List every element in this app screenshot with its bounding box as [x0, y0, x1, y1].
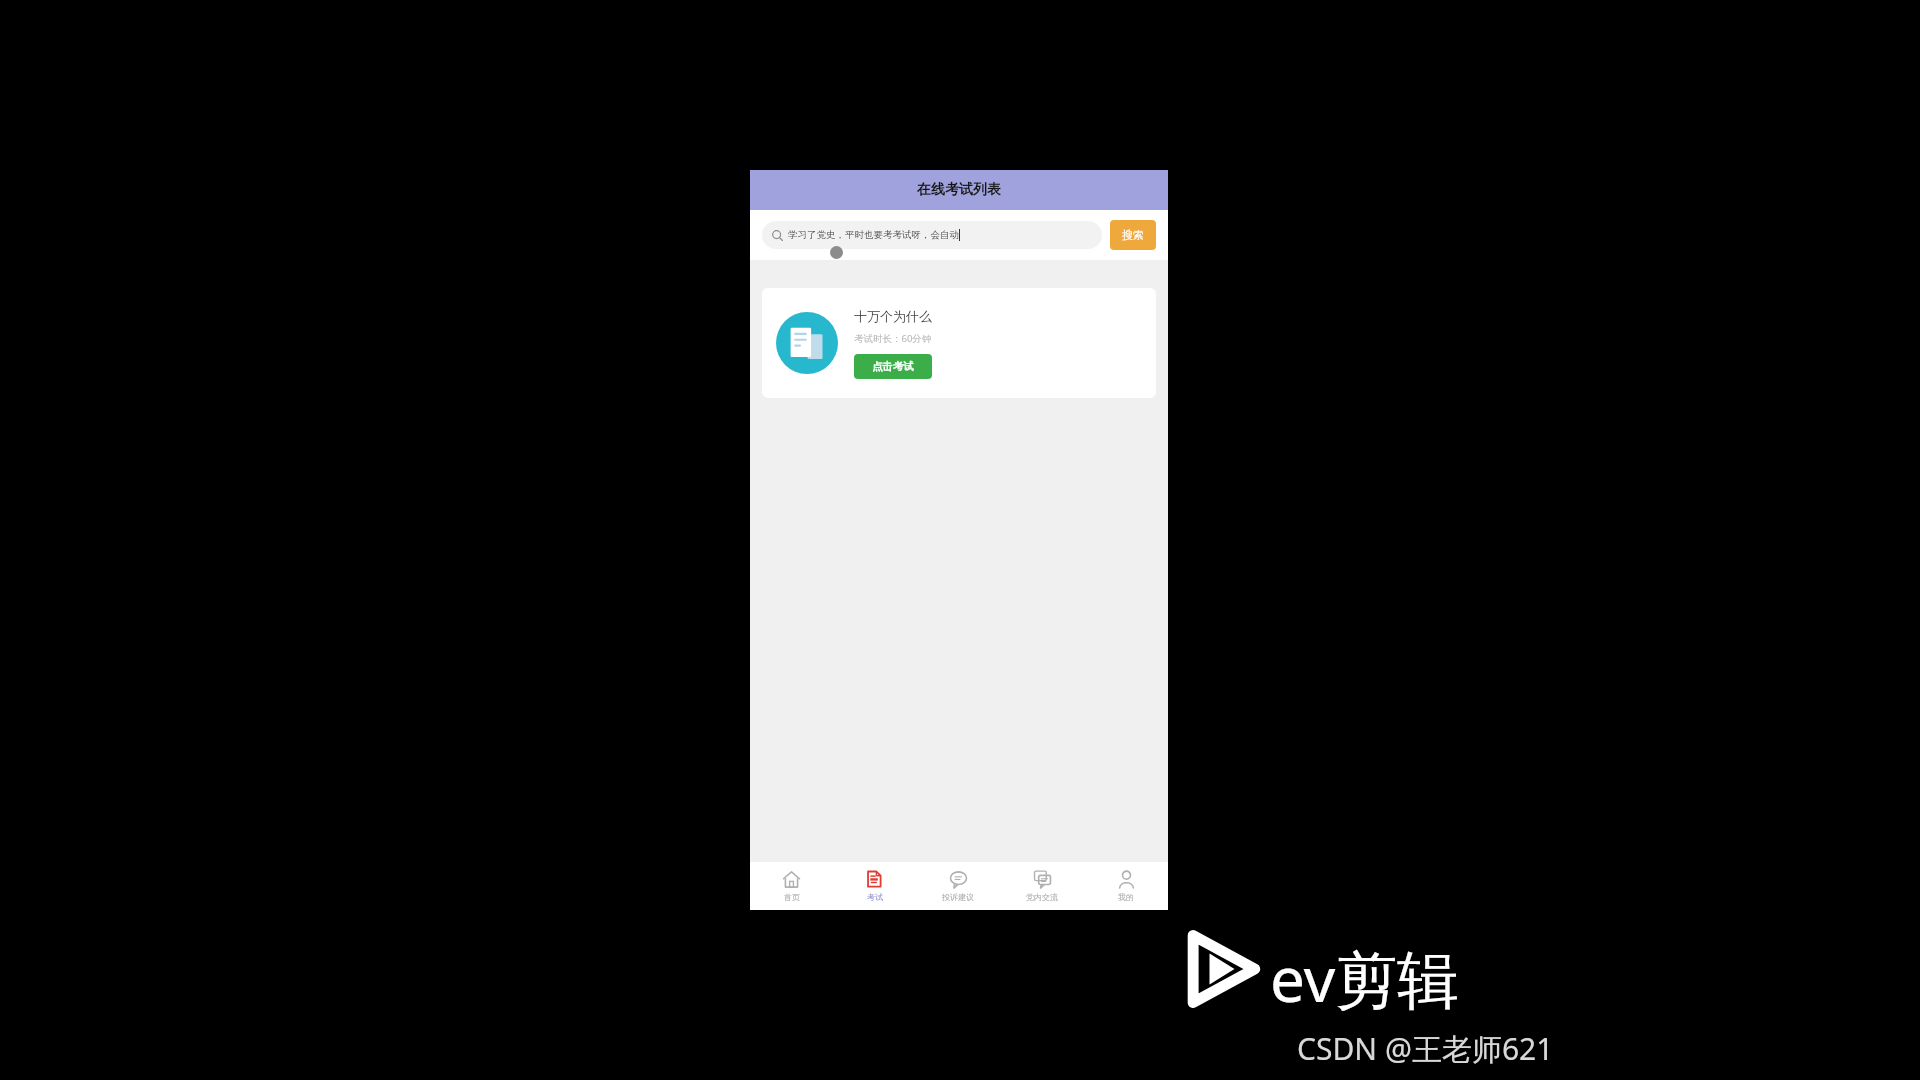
staticText: ev剪辑 — [1270, 936, 1460, 1021]
button[interactable]: 我的 — [1084, 862, 1168, 910]
staticText: CSDN @王老师621 — [1297, 1028, 1554, 1069]
staticText: 学习了党史，平时也要考考试呀，会自动 — [788, 229, 959, 241]
staticText: 在线考试列表 — [917, 181, 1001, 199]
staticText: 搜索 — [1122, 228, 1144, 242]
staticText: 点击考试 — [872, 360, 914, 373]
staticText: 考试 — [867, 892, 883, 902]
button[interactable]: 考试 — [833, 862, 916, 910]
staticText: 考试时长：60分钟 — [854, 332, 932, 345]
button[interactable]: 党内交流 — [1000, 862, 1084, 910]
button[interactable]: 学习了党史，平时也要考考试呀，会自动 — [762, 221, 1102, 249]
staticText: 党内交流 — [1026, 892, 1058, 902]
button[interactable]: 首页 — [750, 862, 833, 910]
staticText: 十万个为什么 — [854, 308, 932, 324]
staticText: 首页 — [784, 892, 800, 902]
button[interactable]: 投诉建议 — [916, 862, 1000, 910]
staticText: 我的 — [1118, 892, 1134, 902]
staticText: 投诉建议 — [942, 892, 974, 902]
button[interactable]: 搜索 — [1110, 220, 1156, 250]
button[interactable]: 点击考试 — [854, 354, 932, 379]
button[interactable]: 十万个为什么 — [762, 288, 1156, 398]
